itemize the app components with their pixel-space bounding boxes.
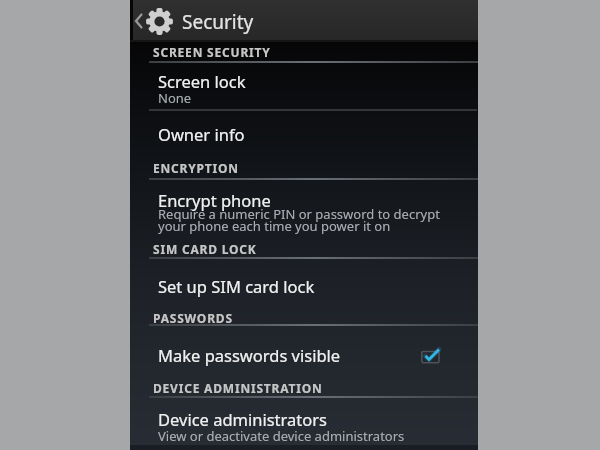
staticText: None [158,89,192,107]
button[interactable]: Security [130,0,478,42]
staticText: View or deactivate device administrators [158,427,405,445]
staticText: Make passwords visible [158,344,341,366]
staticText: DEVICE ADMINISTRATION [153,380,323,396]
button[interactable]: Set up SIM card lock [130,258,478,304]
staticText: SCREEN SECURITY [153,44,271,60]
staticText: Security [182,9,254,35]
button[interactable]: Make passwords visible [130,326,478,378]
staticText: Owner info [158,123,245,145]
staticText: Set up SIM card lock [158,275,315,297]
staticText: ENCRYPTION [153,160,239,176]
staticText: Require a numeric PIN or password to dec… [158,205,440,223]
button[interactable]: Encrypt phone [130,179,478,237]
button[interactable]: Owner info [130,111,478,155]
staticText: PASSWORDS [153,310,233,326]
button[interactable]: Screen lock [130,62,478,110]
staticText: Screen lock [158,70,246,92]
staticText: Encrypt phone [158,189,271,211]
staticText: Device administrators [158,408,327,430]
staticText: SIM CARD LOCK [153,241,257,257]
button[interactable]: Device administrators [130,396,478,446]
staticText: your phone each time you power it on [158,217,391,235]
